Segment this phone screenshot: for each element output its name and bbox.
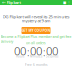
staticText: mystery at 9 am — [21, 18, 50, 23]
staticText: 00 — [14, 43, 26, 58]
button[interactable]: More options — [67, 0, 70, 5]
staticText: OG Flipkart will reveal its 25 minutes — [2, 14, 69, 19]
staticText: Seconds — [46, 54, 58, 58]
staticText: ■ — [63, 0, 66, 4]
button[interactable]: Cart — [62, 0, 67, 5]
staticText: Minutes — [30, 54, 42, 58]
staticText: ← — [2, 0, 6, 5]
staticText: ⋮ — [67, 0, 71, 5]
staticText: : — [43, 45, 45, 59]
staticText: GET MY COUPON — [21, 28, 50, 33]
staticText: Flipkart — [6, 0, 21, 5]
staticText: Free 6 months — [25, 63, 47, 67]
staticText: on all orders — [26, 40, 46, 45]
staticText: 00 — [30, 43, 42, 58]
staticText: Become a Flipkart Plus member and get fr… — [0, 34, 71, 44]
staticText: : — [27, 45, 29, 59]
staticText: Hours — [16, 54, 24, 58]
button[interactable]: GET MY COUPON — [21, 27, 50, 34]
staticText: 00 — [46, 43, 58, 58]
button[interactable]: Back — [1, 0, 6, 5]
